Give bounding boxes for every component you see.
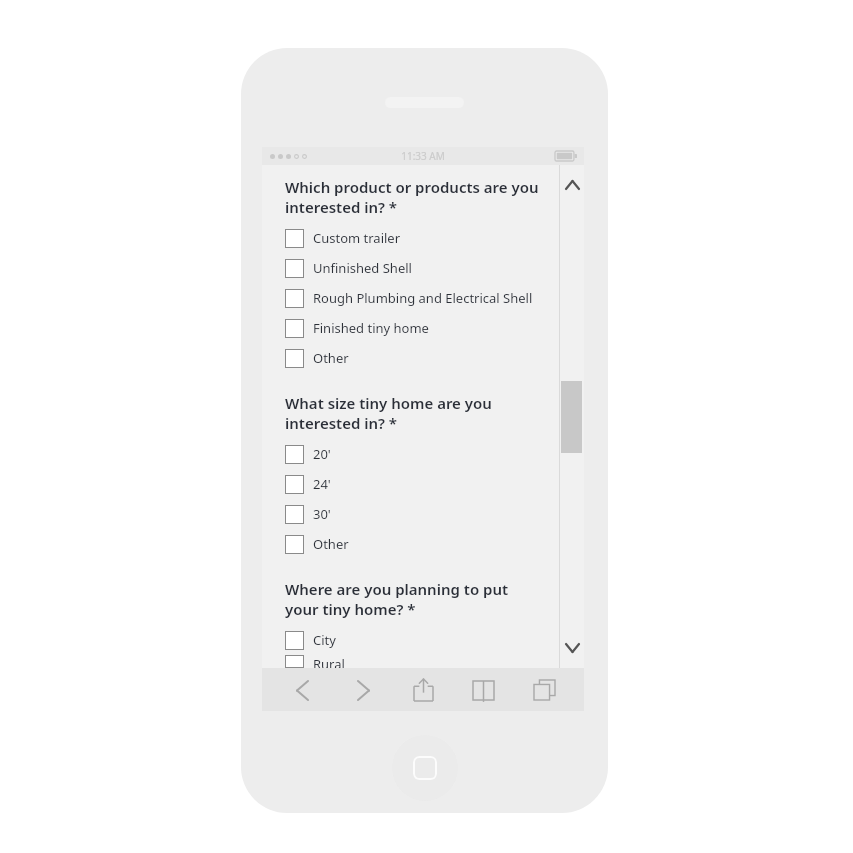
button[interactable]: 20' bbox=[263, 439, 584, 469]
button[interactable]: Unfinished Shell bbox=[263, 253, 584, 283]
staticText: 24' bbox=[313, 475, 331, 493]
button[interactable]: Other bbox=[263, 343, 584, 373]
staticText: Rough Plumbing and Electrical Shell bbox=[313, 289, 533, 307]
staticText: 20' bbox=[313, 445, 331, 463]
button[interactable]: City bbox=[263, 625, 584, 655]
staticText: Other bbox=[313, 535, 349, 553]
button[interactable]: Rough Plumbing and Electrical Shell bbox=[263, 283, 584, 313]
button[interactable]: Home bbox=[392, 735, 458, 801]
staticText: Custom trailer bbox=[313, 229, 401, 247]
staticText: Finished tiny home bbox=[313, 319, 429, 337]
button[interactable]: Finished tiny home bbox=[263, 313, 584, 343]
staticText: 30' bbox=[313, 505, 331, 523]
button[interactable]: Forward bbox=[338, 671, 388, 709]
button[interactable]: 24' bbox=[263, 469, 584, 499]
staticText: Where are you planning to put your tiny … bbox=[285, 579, 509, 619]
staticText: Other bbox=[313, 349, 349, 367]
staticText: Rural bbox=[313, 655, 345, 668]
staticText: What size tiny home are you interested i… bbox=[285, 393, 492, 433]
button[interactable]: Share bbox=[398, 671, 448, 709]
button[interactable]: Bookmarks bbox=[458, 671, 508, 709]
staticText: 11:33 AM bbox=[401, 149, 445, 163]
button[interactable]: Rural bbox=[263, 655, 584, 668]
staticText: City bbox=[313, 631, 336, 649]
button[interactable]: Other bbox=[263, 529, 584, 559]
button[interactable]: Scroll up bbox=[562, 175, 582, 195]
staticText: Unfinished Shell bbox=[313, 259, 412, 277]
button[interactable]: 30' bbox=[263, 499, 584, 529]
button[interactable]: Back bbox=[277, 671, 327, 709]
staticText: Which product or products are you intere… bbox=[285, 177, 539, 217]
button[interactable]: Tabs bbox=[519, 671, 569, 709]
button[interactable]: Custom trailer bbox=[263, 223, 584, 253]
button[interactable]: Scroll down bbox=[562, 638, 582, 658]
